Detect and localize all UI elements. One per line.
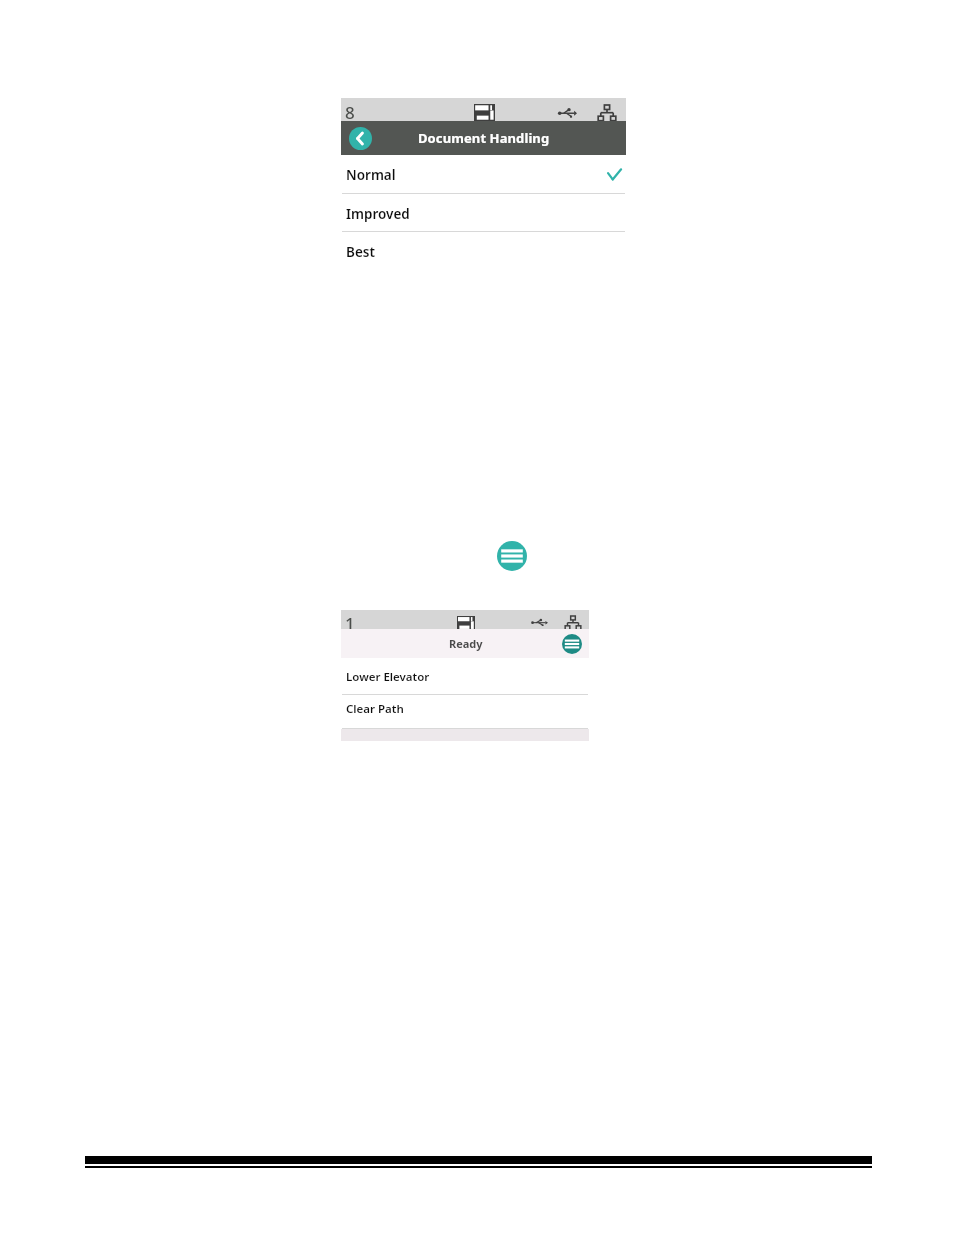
button[interactable]: Menu — [562, 634, 582, 654]
button[interactable]: Lower Elevator — [341, 658, 589, 694]
staticText: Clear Path — [346, 701, 404, 717]
staticText: Best — [346, 243, 375, 261]
staticText: Ready — [449, 636, 483, 651]
button[interactable]: Normal — [341, 155, 626, 193]
button[interactable]: Best — [341, 232, 626, 270]
button[interactable]: Clear Path — [341, 695, 589, 728]
staticText: Improved — [346, 205, 410, 223]
button[interactable]: Back — [349, 127, 372, 150]
staticText: Lower Elevator — [346, 669, 430, 685]
staticText: 8 — [345, 101, 355, 124]
button[interactable]: Improved — [341, 194, 626, 231]
staticText: 1 — [345, 612, 355, 631]
staticText: Normal — [346, 166, 396, 184]
button[interactable]: Menu — [497, 541, 527, 571]
staticText: Document Handling — [418, 129, 550, 147]
